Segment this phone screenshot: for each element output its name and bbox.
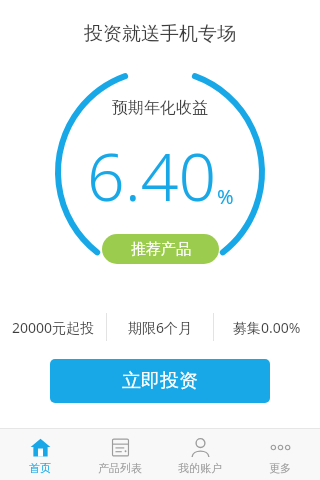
staticText: 期限6个月 bbox=[128, 318, 193, 337]
button[interactable]: More bbox=[240, 429, 320, 480]
staticText: 推荐产品 bbox=[131, 240, 191, 259]
staticText: 更多 bbox=[269, 461, 291, 475]
button[interactable]: 推荐产品 bbox=[102, 234, 219, 264]
button[interactable]: Home bbox=[0, 429, 80, 480]
button[interactable]: My account bbox=[160, 429, 240, 480]
staticText: 立即投资 bbox=[122, 369, 198, 393]
staticText: 募集0.00% bbox=[233, 318, 301, 337]
staticText: 产品列表 bbox=[98, 461, 142, 475]
button[interactable]: Product list bbox=[80, 429, 160, 480]
staticText: 首页 bbox=[29, 461, 51, 475]
staticText: % bbox=[217, 183, 234, 210]
staticText: 6.40 bbox=[87, 130, 217, 220]
staticText: 我的账户 bbox=[178, 461, 222, 475]
button[interactable]: 立即投资 bbox=[50, 359, 270, 403]
staticText: 预期年化收益 bbox=[112, 98, 208, 118]
staticText: 20000元起投 bbox=[12, 318, 95, 337]
staticText: 投资就送手机专场 bbox=[84, 22, 236, 46]
